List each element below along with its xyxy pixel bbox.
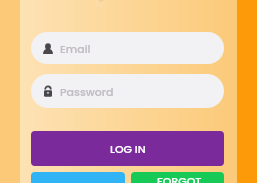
button[interactable]: FORGOT bbox=[131, 172, 224, 183]
button[interactable]: LOG IN bbox=[31, 131, 224, 166]
staticText: Password bbox=[60, 84, 114, 99]
staticText: FORGOT bbox=[157, 173, 202, 183]
button[interactable]: Password bbox=[31, 74, 224, 108]
staticText: LOG IN bbox=[110, 141, 146, 156]
button[interactable]: Sign up bbox=[31, 172, 125, 183]
staticText: Email bbox=[60, 41, 91, 56]
button[interactable]: Email bbox=[31, 32, 224, 64]
